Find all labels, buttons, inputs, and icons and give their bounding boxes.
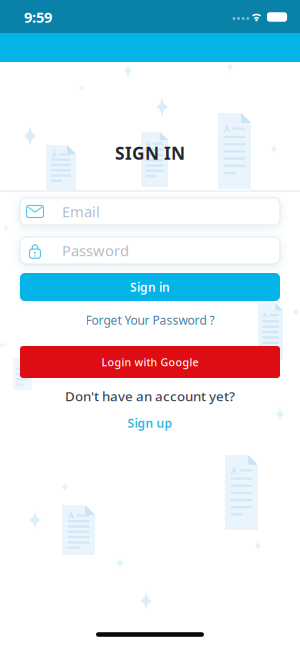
button[interactable]: Sign up bbox=[127, 415, 172, 431]
staticText: A bbox=[263, 310, 267, 319]
staticText: Password bbox=[62, 241, 129, 260]
button[interactable]: Password bbox=[20, 237, 280, 264]
staticText: Email bbox=[62, 202, 100, 221]
button[interactable]: Sign in bbox=[20, 273, 280, 301]
staticText: Forget Your Password ? bbox=[85, 312, 214, 328]
staticText: Login with Google bbox=[101, 355, 198, 369]
staticText: A bbox=[146, 139, 150, 148]
staticText: Don't have an account yet? bbox=[65, 387, 235, 405]
staticText: 9:59 bbox=[24, 7, 52, 27]
button[interactable]: Login with Google bbox=[20, 346, 280, 378]
staticText: SIGN IN bbox=[115, 141, 185, 164]
staticText: A bbox=[68, 509, 74, 522]
staticText: A bbox=[231, 465, 237, 477]
button[interactable]: Forget Your Password ? bbox=[85, 312, 214, 328]
staticText: A bbox=[224, 123, 230, 135]
staticText: Sign up bbox=[127, 415, 172, 431]
staticText: A bbox=[52, 149, 57, 160]
button[interactable]: Email bbox=[20, 198, 280, 225]
staticText: Sign in bbox=[130, 279, 170, 295]
